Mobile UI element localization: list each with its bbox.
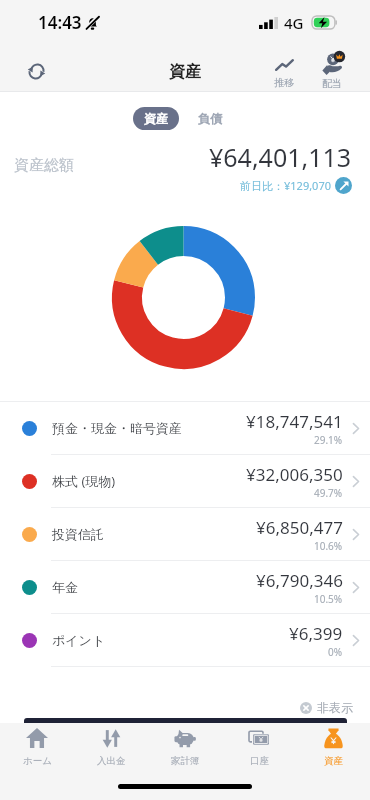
staticText: 年金 (52, 579, 78, 595)
button[interactable]: 資産 (296, 726, 370, 771)
button[interactable]: 投資信託 (0, 508, 370, 560)
button[interactable]: 入出金 (74, 726, 148, 771)
staticText: 資産 (169, 62, 201, 82)
staticText: ¥6,850,477 (256, 516, 343, 539)
staticText: 0% (328, 645, 343, 659)
staticText: 負債 (198, 111, 222, 126)
staticText: 投資信託 (52, 526, 104, 542)
staticText: 口座 (250, 755, 269, 767)
button[interactable]: 口座 (222, 726, 296, 771)
staticText: ポイント (52, 632, 106, 648)
button[interactable]: 負債 (192, 107, 228, 130)
button[interactable]: ホーム (0, 726, 74, 771)
staticText: 14:43 (38, 11, 82, 34)
staticText: 資産 (324, 755, 343, 767)
staticText: 49.7% (314, 486, 343, 500)
button[interactable]: 配当 (311, 52, 353, 90)
button[interactable]: Detail (335, 177, 352, 194)
button[interactable]: 推移 (264, 59, 304, 89)
button[interactable]: 家計簿 (148, 726, 222, 771)
staticText: ¥64,401,113 (209, 140, 352, 174)
staticText: 推移 (274, 76, 294, 89)
button[interactable]: 株式 (現物) (0, 455, 370, 507)
staticText: 預金・現金・暗号資産 (52, 420, 182, 436)
staticText: 株式 (現物) (52, 472, 116, 490)
staticText: ¥6,790,346 (256, 569, 343, 592)
button[interactable]: 年金 (0, 561, 370, 613)
button[interactable]: 非表示 (300, 700, 353, 715)
staticText: ホーム (23, 755, 52, 767)
staticText: 資産 (144, 111, 168, 126)
staticText: 前日比：¥129,070 (240, 178, 331, 193)
button[interactable]: Refresh (20, 55, 52, 87)
staticText: ¥6,399 (289, 622, 343, 645)
button[interactable]: ポイント (0, 614, 370, 666)
staticText: 4G (284, 13, 304, 33)
staticText: 入出金 (97, 755, 126, 767)
staticText: 非表示 (317, 700, 353, 715)
staticText: 10.6% (314, 539, 343, 553)
staticText: ¥32,006,350 (246, 463, 343, 486)
button[interactable]: 資産 (133, 107, 179, 130)
staticText: 資産総額 (14, 156, 74, 175)
staticText: 配当 (322, 77, 342, 90)
staticText: ¥18,747,541 (246, 410, 343, 433)
button[interactable]: 預金・現金・暗号資産 (0, 402, 370, 454)
staticText: 家計簿 (171, 755, 200, 767)
staticText: 10.5% (314, 592, 343, 606)
staticText: 29.1% (314, 433, 343, 447)
